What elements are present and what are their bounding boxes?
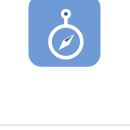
button[interactable]: Safari — [0, 0, 130, 130]
